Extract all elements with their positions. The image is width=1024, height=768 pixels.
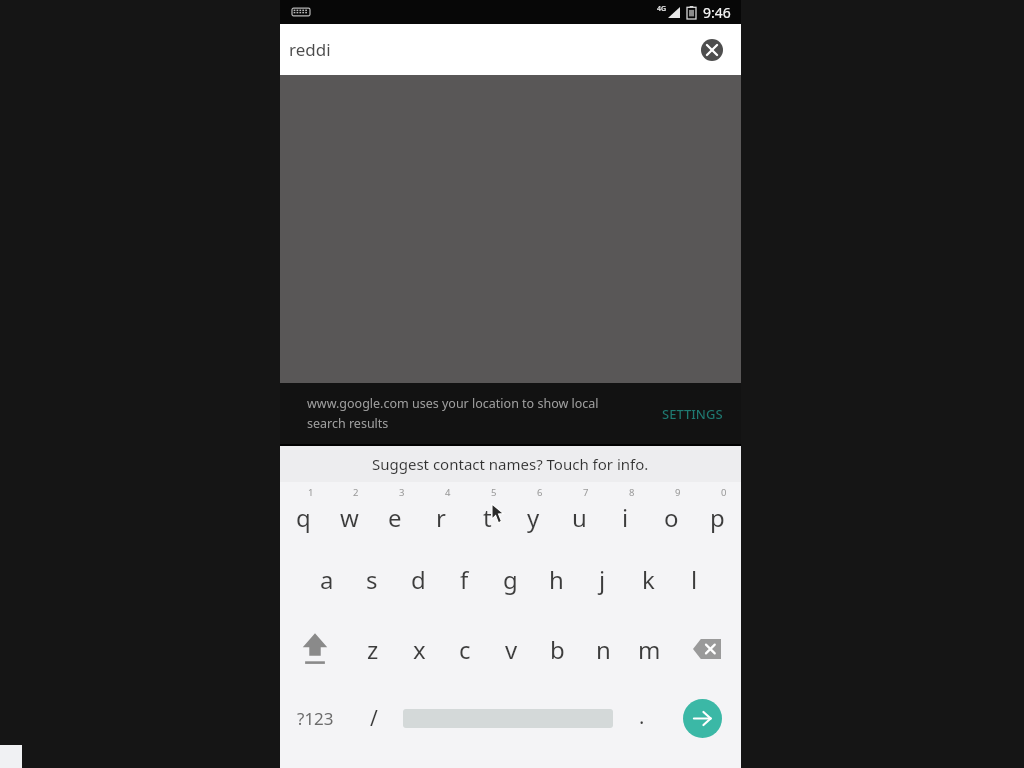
staticText: a [320,563,334,596]
staticText: e [388,501,402,534]
button[interactable]: d [395,544,441,614]
button[interactable]: h [533,544,579,614]
staticText: n [596,633,611,666]
staticText: m [638,633,661,666]
button[interactable]: f [441,544,487,614]
staticText: 2 [353,486,359,499]
staticText: k [642,563,655,596]
staticText: b [550,633,565,666]
button[interactable]: Suggest contact names? Touch for info. [280,446,741,482]
button[interactable]: 4 [418,482,464,544]
button[interactable]: j [579,544,625,614]
staticText: search results [307,415,389,432]
staticText: t [483,501,492,534]
button[interactable]: 2 [326,482,372,544]
staticText: www.google.com uses your location to sho… [307,395,599,412]
button[interactable]: Backspace [672,614,741,684]
button[interactable]: 3 [372,482,418,544]
staticText: 7 [583,486,589,499]
button[interactable]: 7 [556,482,602,544]
staticText: j [599,563,606,596]
button[interactable]: k [625,544,671,614]
staticText: 9 [675,486,681,499]
button[interactable]: n [580,614,626,684]
staticText: SETTINGS [662,405,723,423]
staticText: u [572,501,587,534]
button[interactable]: Search [664,684,741,752]
staticText: . [639,703,645,730]
staticText: v [505,633,518,666]
staticText: 4G [657,4,667,14]
staticText: / [370,704,378,733]
button[interactable]: g [487,544,533,614]
button[interactable]: 0 [694,482,740,544]
staticText: l [691,563,698,596]
button[interactable]: 5 [464,482,510,544]
staticText: 6 [537,486,543,499]
staticText: o [664,501,679,534]
button[interactable]: s [349,544,395,614]
staticText: z [367,633,379,666]
button[interactable]: Space [396,684,619,752]
button[interactable]: 6 [510,482,556,544]
staticText: h [549,563,564,596]
button[interactable]: ?123 [280,684,351,752]
staticText: x [413,633,426,666]
button[interactable]: 1 [281,482,326,544]
button[interactable]: a [304,544,349,614]
staticText: 5 [491,486,497,499]
staticText: p [710,501,725,534]
staticText: w [340,501,359,534]
staticText: i [622,501,629,534]
button[interactable]: . [619,684,664,752]
button[interactable]: Shift [280,614,350,684]
button[interactable]: reddi [289,38,331,61]
staticText: 4 [445,486,451,499]
staticText: y [527,501,540,534]
button[interactable]: SETTINGS [656,397,729,431]
staticText: g [503,563,518,596]
button[interactable]: Clear search [697,35,727,65]
button[interactable]: z [350,614,396,684]
staticText: d [411,563,426,596]
button[interactable]: b [534,614,580,684]
button[interactable]: m [626,614,672,684]
button[interactable]: x [396,614,442,684]
button[interactable]: v [488,614,534,684]
button[interactable]: 8 [602,482,648,544]
staticText: Suggest contact names? Touch for info. [372,454,649,474]
staticText: 1 [308,486,314,499]
staticText: reddi [289,38,331,61]
button[interactable]: c [442,614,488,684]
staticText: 0 [721,486,727,499]
staticText: q [296,501,311,534]
button[interactable]: l [671,544,717,614]
staticText: 8 [629,486,635,499]
staticText: 3 [399,486,405,499]
button[interactable]: 9 [648,482,694,544]
staticText: c [459,633,471,666]
button[interactable]: / [351,684,396,752]
staticText: s [366,563,378,596]
staticText: 9:46 [703,3,731,22]
staticText: f [460,563,469,596]
staticText: ?123 [297,707,334,730]
staticText: r [436,501,446,534]
